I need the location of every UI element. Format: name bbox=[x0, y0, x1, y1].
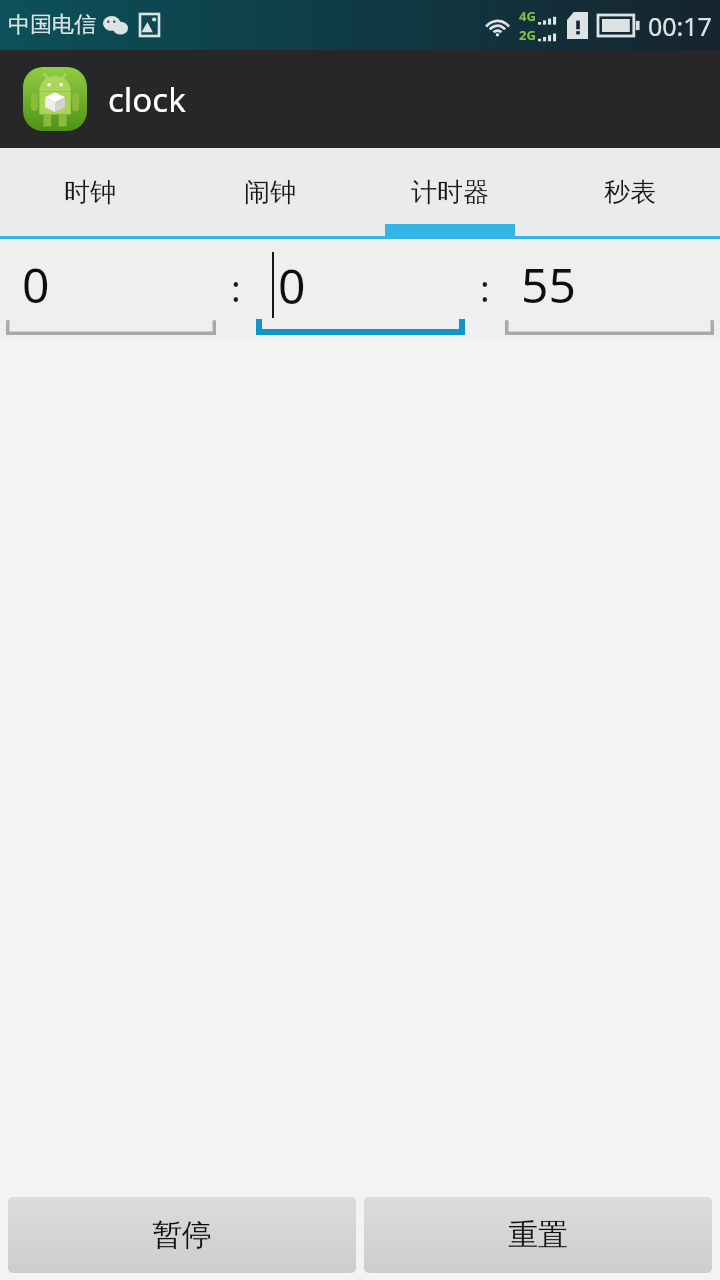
staticText: 闹钟 bbox=[244, 176, 296, 209]
staticText: 暂停 bbox=[152, 1216, 212, 1254]
staticText: : bbox=[480, 264, 490, 313]
button[interactable]: 55 bbox=[505, 239, 714, 338]
staticText: 0 bbox=[22, 252, 50, 317]
button[interactable]: 计时器 bbox=[360, 148, 540, 236]
button[interactable]: 0 bbox=[6, 239, 216, 338]
button[interactable]: 闹钟 bbox=[180, 148, 360, 236]
staticText: 55 bbox=[521, 252, 576, 317]
other: clock app icon bbox=[23, 67, 87, 131]
staticText: clock bbox=[108, 77, 186, 122]
staticText: 00:17 bbox=[648, 9, 712, 43]
staticText: 2G bbox=[519, 26, 536, 44]
staticText: : bbox=[231, 264, 241, 313]
button[interactable]: 秒表 bbox=[540, 148, 720, 236]
button[interactable]: 0 bbox=[256, 239, 465, 338]
staticText: 中国电信 bbox=[8, 11, 96, 39]
staticText: 秒表 bbox=[604, 176, 656, 209]
button[interactable]: 时钟 bbox=[0, 148, 180, 236]
staticText: 0 bbox=[278, 253, 306, 318]
button[interactable]: 暂停 bbox=[8, 1197, 356, 1273]
staticText: 重置 bbox=[508, 1216, 568, 1254]
button[interactable]: 重置 bbox=[364, 1197, 712, 1273]
staticText: 计时器 bbox=[411, 176, 489, 209]
staticText: 时钟 bbox=[64, 176, 116, 209]
staticText: 4G bbox=[519, 7, 536, 25]
